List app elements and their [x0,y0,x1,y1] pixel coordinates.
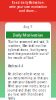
staticText: Daily Motivation [12,32,43,38]
staticText: Read daily Motivation: write your own mo… [9,1,47,13]
staticText: "But he answered and said, It is written… [7,40,48,100]
staticText: Aug 9 [23,25,32,29]
button[interactable]: Daily Motivation [6,31,50,38]
